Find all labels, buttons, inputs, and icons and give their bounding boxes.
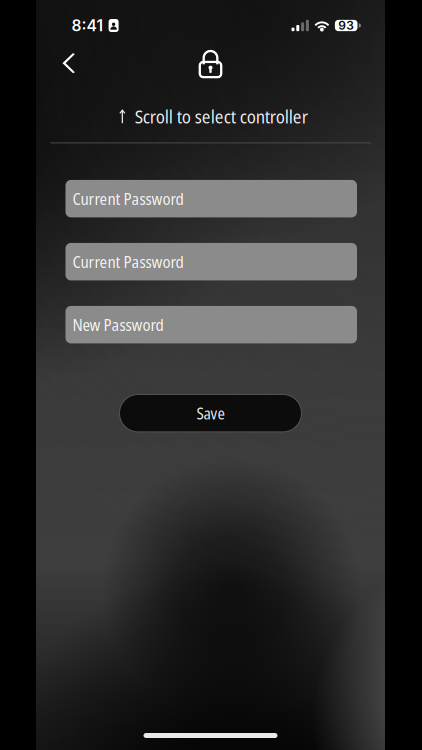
staticText: Save <box>196 402 224 424</box>
button[interactable]: New Password <box>65 306 357 343</box>
staticText: New Password <box>72 313 163 336</box>
staticText: 93 <box>338 18 354 33</box>
button[interactable]: Back <box>48 46 92 80</box>
button[interactable]: Current Password <box>65 243 357 280</box>
staticText: Current Password <box>72 250 183 273</box>
button[interactable]: Save <box>119 394 301 432</box>
staticText: 8:41 <box>72 16 104 35</box>
staticText: Scroll to select controller <box>135 103 308 129</box>
button[interactable]: Current Password <box>65 180 357 217</box>
button[interactable]: Locked <box>188 46 232 80</box>
staticText: Current Password <box>72 187 183 210</box>
